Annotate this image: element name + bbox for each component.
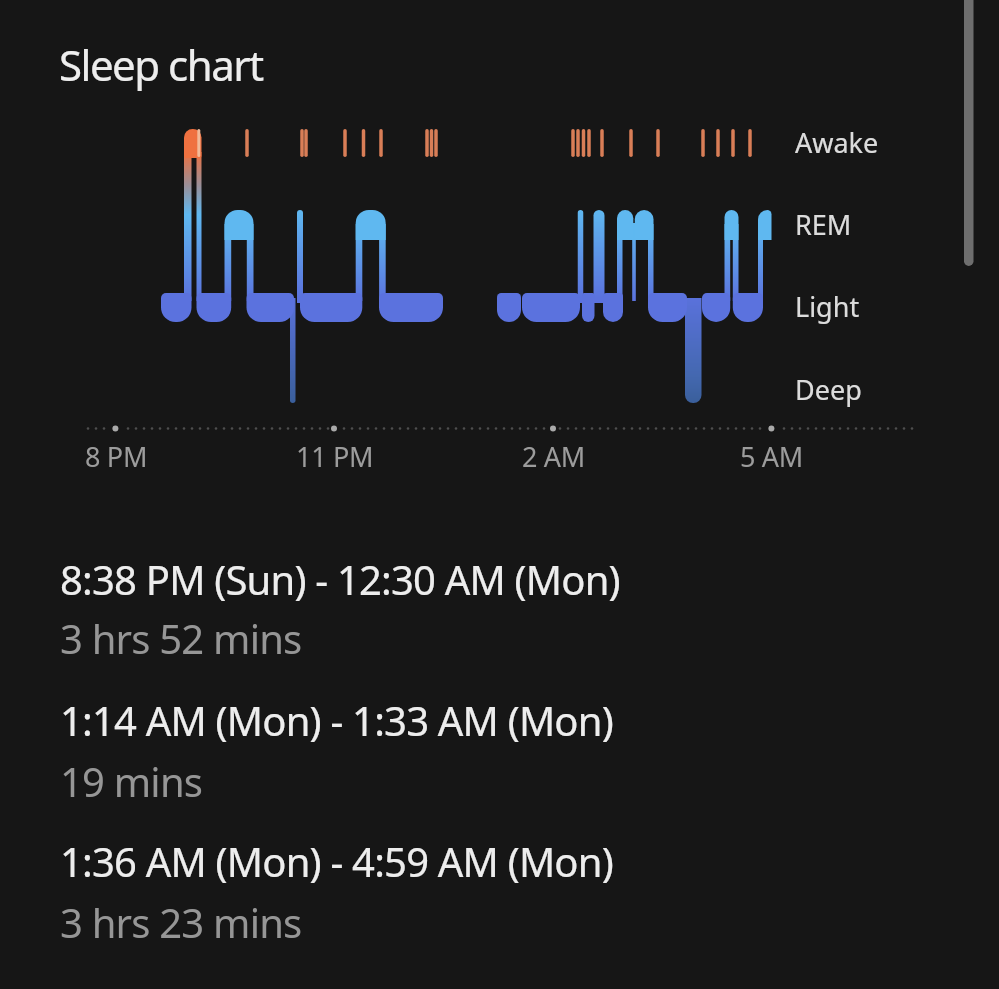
staticText: 2 AM: [522, 438, 586, 475]
staticText: REM: [795, 206, 852, 243]
staticText: 11 PM: [296, 438, 374, 475]
button[interactable]: 1:14 AM (Mon) - 1:33 AM (Mon): [48, 686, 958, 808]
button[interactable]: 8:38 PM (Sun) - 12:30 AM (Mon): [48, 545, 958, 667]
staticText: 3 hrs 52 mins: [60, 611, 302, 665]
staticText: 1:14 AM (Mon) - 1:33 AM (Mon): [60, 693, 613, 747]
staticText: Awake: [795, 124, 879, 161]
staticText: 5 AM: [740, 438, 804, 475]
staticText: Sleep chart: [59, 36, 263, 93]
staticText: 8 PM: [85, 438, 148, 475]
staticText: 8:38 PM (Sun) - 12:30 AM (Mon): [60, 552, 620, 606]
button[interactable]: 1:36 AM (Mon) - 4:59 AM (Mon): [48, 827, 958, 949]
staticText: 19 mins: [60, 754, 203, 808]
staticText: 1:36 AM (Mon) - 4:59 AM (Mon): [60, 834, 613, 888]
staticText: 3 hrs 23 mins: [60, 895, 302, 949]
staticText: Light: [795, 288, 860, 325]
staticText: Deep: [795, 371, 862, 408]
